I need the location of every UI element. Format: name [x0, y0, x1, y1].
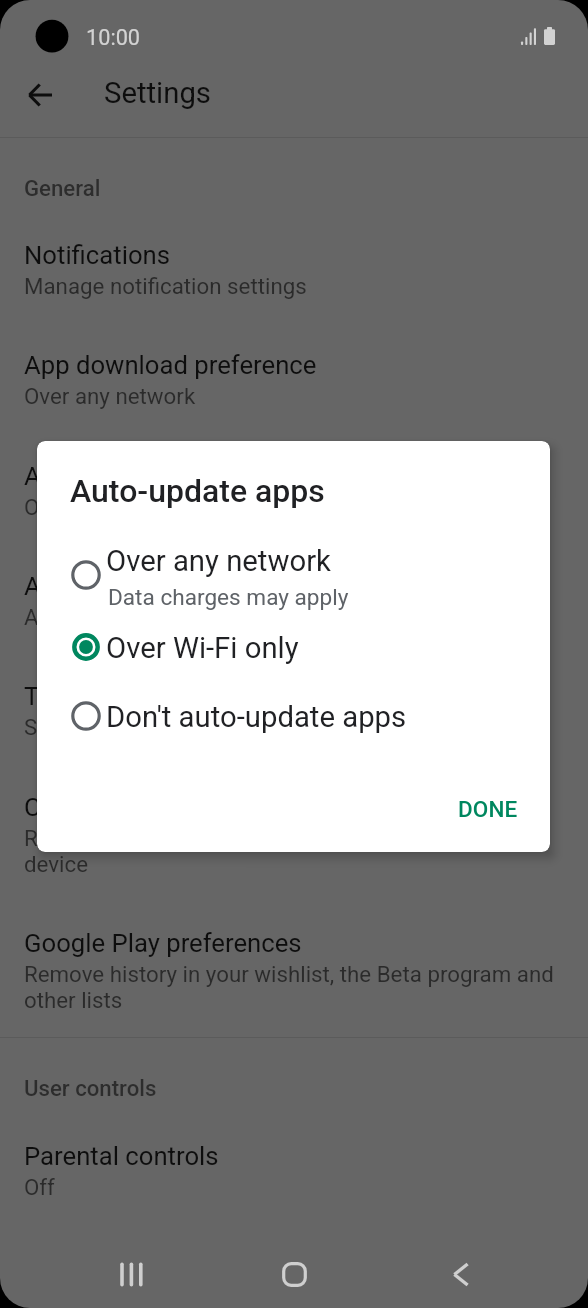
staticText: Google Play preferences [24, 928, 302, 958]
staticText: Auto-play videos [24, 571, 213, 601]
staticText: Don't auto-update apps [106, 700, 407, 734]
staticText: Clear local search history [24, 792, 312, 822]
staticText: Over Wi-Fi only [106, 631, 299, 665]
button[interactable]: Recent apps [96, 1242, 164, 1306]
button[interactable]: Navigate up [17, 72, 63, 118]
button[interactable]: Over any network [37, 549, 550, 601]
staticText: Auto-update apps [24, 461, 227, 491]
button[interactable]: Home [260, 1242, 328, 1306]
staticText: App download preference [24, 350, 317, 380]
staticText: General [24, 175, 101, 201]
staticText: Over any network [106, 544, 331, 578]
button[interactable]: Don't auto-update apps [37, 690, 550, 742]
button[interactable]: Google Play preferences [0, 904, 588, 1037]
staticText: Auto-update apps [70, 472, 325, 510]
button[interactable]: Clear local search history [0, 768, 588, 905]
staticText: Off [24, 1174, 55, 1200]
staticText: Parental controls [24, 1141, 219, 1171]
staticText: DONE [458, 796, 518, 822]
staticText: Over Wi-Fi only [24, 494, 171, 520]
button[interactable]: Theme [0, 657, 588, 767]
staticText: Remove history in your wishlist, the Bet… [24, 961, 558, 1013]
staticText: User controls [24, 1075, 157, 1101]
button[interactable]: Parental controls [0, 1117, 588, 1227]
button[interactable]: Back [426, 1242, 494, 1306]
button[interactable]: Auto-update apps [0, 437, 588, 547]
staticText: Theme [24, 681, 104, 711]
staticText: Manage notification settings [24, 273, 307, 299]
staticText: Auto-play videos over Wi-Fi only [24, 604, 337, 630]
staticText: Remove searches you have performed from … [24, 825, 558, 877]
staticText: Over any network [24, 383, 196, 409]
button[interactable]: DONE [442, 786, 534, 832]
staticText: 10:00 [86, 25, 141, 50]
button[interactable]: App download preference [0, 326, 588, 436]
staticText: Notifications [24, 240, 171, 270]
staticText: Data charges may apply [108, 584, 349, 610]
staticText: System default [24, 714, 173, 740]
button[interactable]: Over Wi-Fi only [37, 621, 550, 673]
staticText: Settings [104, 76, 211, 110]
button[interactable]: Notifications [0, 216, 588, 326]
button[interactable]: Auto-play videos [0, 547, 588, 657]
